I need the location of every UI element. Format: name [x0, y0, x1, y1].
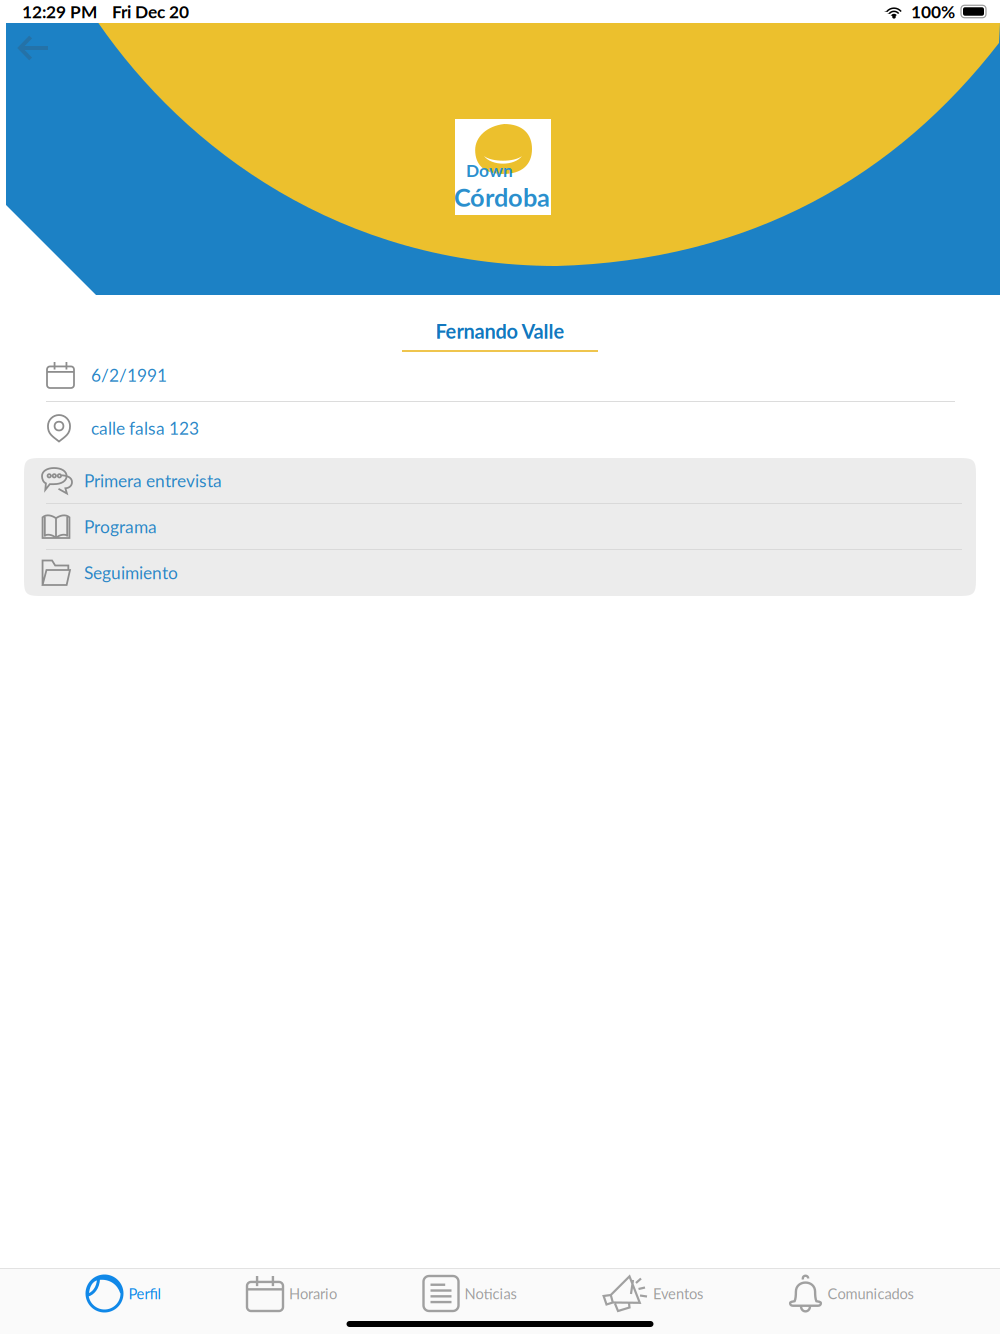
staticText: Comunicados	[827, 1285, 913, 1302]
staticText: Programa	[84, 516, 157, 537]
staticText: 6/2/1991	[91, 365, 167, 385]
staticText: Fernando Valle	[435, 319, 564, 343]
button[interactable]: Back	[6, 23, 62, 73]
staticText: Córdoba	[454, 182, 550, 212]
staticText: Primera entrevista	[84, 470, 222, 491]
button[interactable]: Primera entrevista	[24, 458, 976, 504]
staticText: Noticias	[464, 1285, 516, 1302]
staticText: 12:29 PM	[22, 1, 97, 22]
staticText: calle falsa 123	[91, 418, 199, 438]
button[interactable]: Seguimiento	[24, 550, 976, 596]
button[interactable]: Noticias	[423, 1273, 516, 1314]
staticText: Perfil	[128, 1285, 160, 1302]
staticText: 100%	[911, 1, 955, 22]
staticText: Fri Dec 20	[112, 1, 189, 22]
staticText: Horario	[289, 1285, 337, 1302]
button[interactable]: 6/2/1991	[0, 349, 1000, 402]
staticText: Seguimiento	[84, 562, 178, 583]
button[interactable]: calle falsa 123	[0, 402, 1000, 455]
button[interactable]: Comunicados	[789, 1273, 913, 1314]
button[interactable]: Horario	[247, 1273, 337, 1314]
staticText: Down	[466, 160, 513, 181]
button[interactable]: Eventos	[603, 1273, 703, 1314]
button[interactable]: Perfil	[86, 1273, 160, 1314]
staticText: Eventos	[653, 1285, 703, 1302]
button[interactable]: Programa	[24, 504, 976, 550]
